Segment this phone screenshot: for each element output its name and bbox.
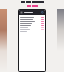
button[interactable] bbox=[20, 22, 44, 24]
button[interactable]: Menu bbox=[19, 10, 45, 15]
button[interactable] bbox=[20, 28, 44, 30]
button[interactable] bbox=[20, 26, 44, 28]
button[interactable] bbox=[20, 18, 44, 20]
button[interactable]: Menu bbox=[20, 11, 23, 14]
button[interactable] bbox=[20, 16, 44, 18]
button[interactable] bbox=[20, 20, 44, 22]
button[interactable]: Search bbox=[41, 11, 44, 14]
button[interactable]: Menu bbox=[18, 9, 46, 72]
button[interactable] bbox=[20, 24, 44, 26]
button[interactable] bbox=[20, 30, 44, 32]
